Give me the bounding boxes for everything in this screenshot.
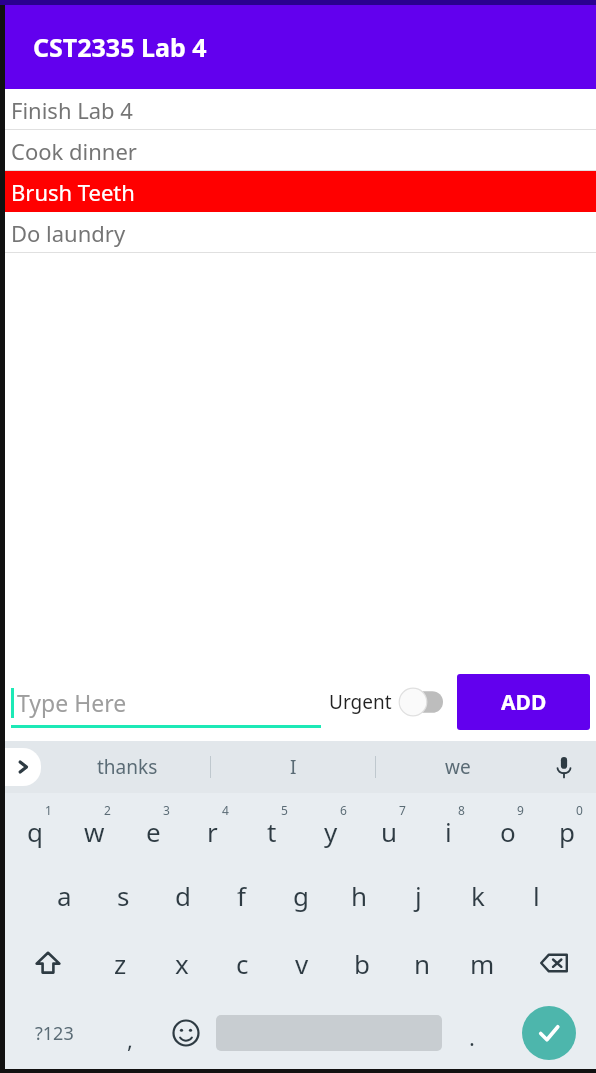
button[interactable]: CST2335 Lab 4 xyxy=(5,5,596,89)
staticText: s xyxy=(117,878,130,913)
staticText: we xyxy=(445,754,471,780)
button[interactable]: thanks xyxy=(45,741,210,793)
staticText: v xyxy=(295,946,309,981)
button[interactable]: t xyxy=(242,793,301,861)
staticText: Do laundry xyxy=(11,218,126,248)
button[interactable]: Do laundry xyxy=(5,212,596,253)
staticText: Finish Lab 4 xyxy=(11,95,133,125)
staticText: c xyxy=(236,946,249,981)
button[interactable]: n xyxy=(392,929,452,997)
staticText: e xyxy=(146,814,161,849)
staticText: k xyxy=(471,878,485,913)
button[interactable]: i xyxy=(419,793,478,861)
staticText: i xyxy=(445,814,452,849)
staticText: j xyxy=(415,878,422,913)
button[interactable]: k xyxy=(448,861,507,929)
button[interactable]: g xyxy=(271,861,330,929)
staticText: u xyxy=(381,814,398,849)
button[interactable]: e xyxy=(124,793,183,861)
button[interactable]: Urgent xyxy=(329,687,448,717)
staticText: y xyxy=(324,814,338,849)
button[interactable]: ?123 xyxy=(5,997,103,1069)
staticText: l xyxy=(533,878,540,913)
button[interactable]: l xyxy=(507,861,566,929)
button[interactable]: j xyxy=(389,861,448,929)
staticText: Type Here xyxy=(17,687,127,718)
button[interactable]: Voice input xyxy=(546,749,582,785)
staticText: thanks xyxy=(97,754,158,780)
button[interactable]: Cook dinner xyxy=(5,130,596,171)
button[interactable]: Backspace xyxy=(512,929,596,997)
staticText: I xyxy=(290,754,297,780)
staticText: r xyxy=(207,814,218,849)
button[interactable]: ADD xyxy=(457,674,590,730)
button[interactable]: r xyxy=(183,793,242,861)
staticText: x xyxy=(175,946,189,981)
button[interactable]: c xyxy=(212,929,272,997)
staticText: d xyxy=(175,878,191,913)
button[interactable]: w xyxy=(65,793,124,861)
staticText: Urgent xyxy=(329,689,392,715)
button[interactable]: v xyxy=(272,929,332,997)
staticText: w xyxy=(84,814,105,849)
staticText: ?123 xyxy=(35,1021,74,1046)
button[interactable]: p xyxy=(537,793,596,861)
staticText: m xyxy=(470,946,495,981)
button[interactable]: , xyxy=(103,997,156,1069)
staticText: 9 xyxy=(517,802,524,818)
staticText: 2 xyxy=(104,802,111,818)
button[interactable]: Shift xyxy=(5,929,90,997)
button[interactable]: s xyxy=(94,861,153,929)
button[interactable]: o xyxy=(478,793,537,861)
staticText: , xyxy=(127,1024,133,1054)
button[interactable]: q xyxy=(5,793,65,861)
button[interactable]: y xyxy=(301,793,360,861)
button[interactable]: a xyxy=(35,861,94,929)
staticText: CST2335 Lab 4 xyxy=(33,30,207,64)
button[interactable]: Enter xyxy=(502,997,596,1069)
staticText: h xyxy=(351,878,368,913)
staticText: 3 xyxy=(163,802,170,818)
button[interactable]: Brush Teeth xyxy=(5,171,596,212)
staticText: o xyxy=(500,814,516,849)
button[interactable]: we xyxy=(376,741,540,793)
staticText: ADD xyxy=(501,688,547,717)
button[interactable]: b xyxy=(332,929,392,997)
button[interactable]: Type Here xyxy=(11,676,321,728)
staticText: Cook dinner xyxy=(11,136,137,166)
button[interactable]: . xyxy=(442,997,502,1069)
staticText: Brush Teeth xyxy=(11,177,135,207)
staticText: 7 xyxy=(399,802,406,818)
button[interactable]: h xyxy=(330,861,389,929)
staticText: g xyxy=(293,878,309,913)
button[interactable]: u xyxy=(360,793,419,861)
button[interactable]: Emoji xyxy=(156,997,216,1069)
staticText: t xyxy=(267,814,277,849)
staticText: 0 xyxy=(576,802,583,818)
button[interactable]: d xyxy=(153,861,212,929)
staticText: 1 xyxy=(45,802,52,818)
staticText: q xyxy=(27,814,43,849)
button[interactable]: x xyxy=(151,929,212,997)
staticText: z xyxy=(114,946,127,981)
staticText: 8 xyxy=(458,802,465,818)
staticText: n xyxy=(414,946,431,981)
staticText: 5 xyxy=(281,802,288,818)
staticText: 4 xyxy=(222,802,229,818)
button[interactable]: Expand suggestions xyxy=(5,748,41,786)
staticText: b xyxy=(354,946,370,981)
button[interactable]: I xyxy=(211,741,375,793)
staticText: 6 xyxy=(340,802,347,818)
staticText: f xyxy=(237,878,246,913)
button[interactable]: m xyxy=(452,929,512,997)
button[interactable]: z xyxy=(90,929,151,997)
staticText: p xyxy=(559,814,575,849)
button[interactable]: Finish Lab 4 xyxy=(5,89,596,130)
staticText: a xyxy=(57,878,72,913)
staticText: . xyxy=(469,1022,475,1052)
button[interactable]: f xyxy=(212,861,271,929)
